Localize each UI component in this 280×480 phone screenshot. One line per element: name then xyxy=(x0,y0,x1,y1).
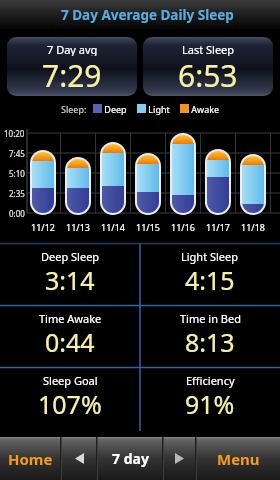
staticText: Time in Bed xyxy=(180,311,241,326)
button[interactable]: Menu xyxy=(197,437,280,480)
button[interactable]: Efficiency xyxy=(140,368,280,429)
staticText: 4:15 xyxy=(185,263,235,297)
staticText: 91% xyxy=(185,387,235,421)
button[interactable]: 7 day xyxy=(98,437,162,480)
staticText: 7 Day avg xyxy=(47,42,98,56)
button[interactable]: Sleep Goal xyxy=(0,368,140,429)
staticText: 11/15 xyxy=(136,221,160,233)
staticText: Sleep Goal xyxy=(43,373,98,388)
staticText: 11/18 xyxy=(241,221,265,233)
staticText: 7:29 xyxy=(42,55,102,96)
staticText: Last Sleep xyxy=(182,42,235,56)
button[interactable] xyxy=(164,437,195,480)
staticText: 10:20 xyxy=(4,128,25,139)
staticText: Light xyxy=(146,103,170,115)
staticText: 107% xyxy=(38,387,102,421)
staticText: 11/14 xyxy=(101,221,125,233)
staticText: 11/13 xyxy=(66,221,90,233)
button[interactable]: Time Awake xyxy=(0,306,140,367)
button[interactable]: Home xyxy=(0,437,60,480)
staticText: 11/16 xyxy=(171,221,195,233)
button[interactable]: Deep Sleep xyxy=(0,244,140,305)
staticText: 8:13 xyxy=(185,325,235,359)
staticText: Efficiency xyxy=(186,373,235,388)
staticText: 7:45 xyxy=(9,148,25,159)
staticText: Home xyxy=(8,449,53,469)
staticText: 5:10 xyxy=(9,168,25,179)
staticText: 11/12 xyxy=(31,221,55,233)
staticText: 7 Day Average Daily Sleep xyxy=(61,6,234,24)
staticText: Time Awake xyxy=(39,311,102,326)
staticText: Light Sleep xyxy=(181,249,239,264)
staticText: Menu xyxy=(217,449,260,469)
staticText: 0:00 xyxy=(9,208,25,219)
button[interactable]: Last Sleep xyxy=(143,37,273,96)
button[interactable]: 7 Day avg xyxy=(7,37,137,96)
staticText: Deep Sleep xyxy=(41,249,100,264)
staticText: 7 day xyxy=(112,449,149,468)
button[interactable]: Light Sleep xyxy=(140,244,280,305)
staticText: Awake xyxy=(189,103,220,115)
staticText: 2:35 xyxy=(9,188,25,199)
button[interactable]: Time in Bed xyxy=(140,306,280,367)
staticText: 3:14 xyxy=(45,263,95,297)
button[interactable] xyxy=(62,437,96,480)
staticText: Sleep: xyxy=(61,103,87,115)
staticText: 0:44 xyxy=(45,325,95,359)
button[interactable]: 7 Day Average Daily Sleep xyxy=(0,0,280,29)
staticText: Deep xyxy=(102,103,127,115)
staticText: 6:53 xyxy=(178,55,238,96)
staticText: 11/17 xyxy=(206,221,230,233)
